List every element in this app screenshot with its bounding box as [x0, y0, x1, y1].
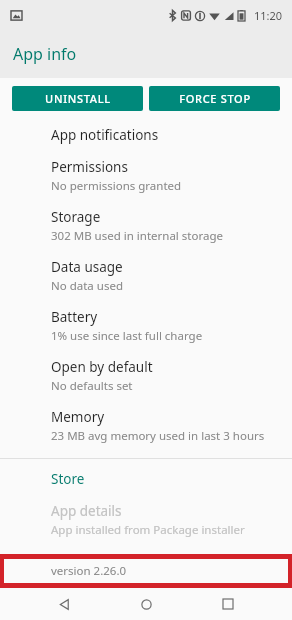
button[interactable]: FORCE STOP	[149, 86, 280, 111]
staticText: Storage	[51, 208, 101, 226]
button[interactable]: Data usage	[0, 250, 292, 300]
button[interactable]: Open by default	[0, 350, 292, 400]
staticText: App details	[51, 502, 122, 520]
staticText: version 2.26.0	[51, 563, 127, 579]
staticText: Store	[51, 470, 85, 488]
staticText: No data used	[51, 278, 123, 294]
button[interactable]: Recent apps	[210, 588, 246, 620]
staticText: FORCE STOP	[179, 91, 251, 106]
staticText: Open by default	[51, 358, 153, 376]
staticText: UNINSTALL	[45, 91, 111, 106]
staticText: Memory	[51, 408, 105, 426]
button[interactable]: Permissions	[0, 150, 292, 200]
button[interactable]: App notifications	[0, 120, 292, 150]
staticText: Battery	[51, 308, 98, 326]
button[interactable]: Home	[128, 588, 164, 620]
button[interactable]: Store	[0, 459, 292, 496]
button[interactable]: UNINSTALL	[12, 86, 143, 111]
staticText: App notifications	[51, 126, 159, 144]
staticText: App info	[13, 43, 77, 65]
button[interactable]: Back	[46, 588, 82, 620]
staticText: 302 MB used in internal storage	[51, 228, 223, 244]
staticText: Permissions	[51, 158, 128, 176]
staticText: Data usage	[51, 258, 123, 276]
staticText: 11:20	[254, 8, 283, 23]
staticText: No defaults set	[51, 378, 133, 394]
button[interactable]: Storage	[0, 200, 292, 250]
staticText: 23 MB avg memory used in last 3 hours	[51, 428, 265, 444]
staticText: No permissions granted	[51, 178, 182, 194]
button[interactable]: Battery	[0, 300, 292, 350]
staticText: App installed from Package installer	[51, 522, 245, 538]
staticText: 1% use since last full charge	[51, 328, 203, 344]
button[interactable]: Memory	[0, 400, 292, 452]
